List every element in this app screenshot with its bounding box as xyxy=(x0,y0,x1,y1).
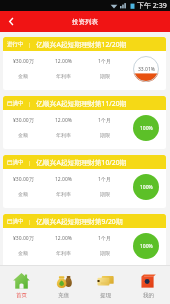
button[interactable]: 已满中 xyxy=(3,96,166,149)
staticText: 期限 xyxy=(100,73,110,79)
staticText: 年利率 xyxy=(56,250,71,256)
staticText: | xyxy=(24,218,36,225)
staticText: ¥30.00万 xyxy=(13,235,34,242)
button[interactable]: 充值 xyxy=(42,266,84,304)
staticText: 亿顺兴A起短期理财第9/20期 xyxy=(36,217,123,226)
staticText: 亿顺兴A起短期理财第11/20期 xyxy=(36,99,127,108)
staticText: 金额 xyxy=(18,191,28,197)
staticText: 金额 xyxy=(18,73,28,79)
staticText: 年利率 xyxy=(56,191,71,197)
staticText: 12.00% xyxy=(55,235,72,242)
staticText: 12.00% xyxy=(55,58,72,65)
staticText: ¥30.00万 xyxy=(13,117,34,124)
staticText: 已满中 xyxy=(7,218,24,225)
staticText: 12.00% xyxy=(55,117,72,124)
staticText: | xyxy=(24,100,36,107)
staticText: 金额 xyxy=(18,132,28,138)
staticText: 投资列表 xyxy=(72,18,98,26)
staticText: 下午 2:39 xyxy=(137,1,167,11)
staticText: 1个月 xyxy=(98,235,111,242)
staticText: ¥30.00万 xyxy=(13,176,34,183)
staticText: 年利率 xyxy=(56,132,71,138)
button[interactable]: 已满中 xyxy=(3,155,166,208)
staticText: 1个月 xyxy=(98,117,111,124)
staticText: 亿顺兴A起短期理财第12/20期 xyxy=(36,40,127,49)
staticText: 已满中 xyxy=(7,159,24,166)
staticText: | xyxy=(24,41,36,48)
staticText: 期限 xyxy=(100,191,110,197)
staticText: ¥30.00万 xyxy=(13,58,34,65)
staticText: 首页 xyxy=(16,292,27,299)
staticText: 我的 xyxy=(143,292,154,299)
button[interactable]: 进行中 xyxy=(3,37,166,90)
staticText: 亿顺兴A起短期理财第10/20期 xyxy=(36,158,127,167)
staticText: 100% xyxy=(140,125,153,132)
staticText: 100% xyxy=(140,243,153,250)
staticText: 已满中 xyxy=(7,100,24,107)
button[interactable]: 我的 xyxy=(127,266,170,304)
staticText: 期限 xyxy=(100,132,110,138)
staticText: 1个月 xyxy=(98,58,111,65)
staticText: 充值 xyxy=(58,292,69,299)
staticText: 年利率 xyxy=(56,73,71,79)
staticText: 金额 xyxy=(18,250,28,256)
staticText: 进行中 xyxy=(7,41,24,48)
button[interactable]: 已满中 xyxy=(3,214,166,265)
button[interactable]: Back xyxy=(0,11,22,32)
staticText: | xyxy=(24,159,36,166)
staticText: 1个月 xyxy=(98,176,111,183)
button[interactable]: 提现 xyxy=(84,266,127,304)
staticText: 100% xyxy=(140,184,153,191)
staticText: 期限 xyxy=(100,250,110,256)
staticText: 提现 xyxy=(100,292,111,299)
staticText: 33.01% xyxy=(138,66,155,73)
staticText: 12.00% xyxy=(55,176,72,183)
button[interactable]: 首页 xyxy=(0,266,42,304)
